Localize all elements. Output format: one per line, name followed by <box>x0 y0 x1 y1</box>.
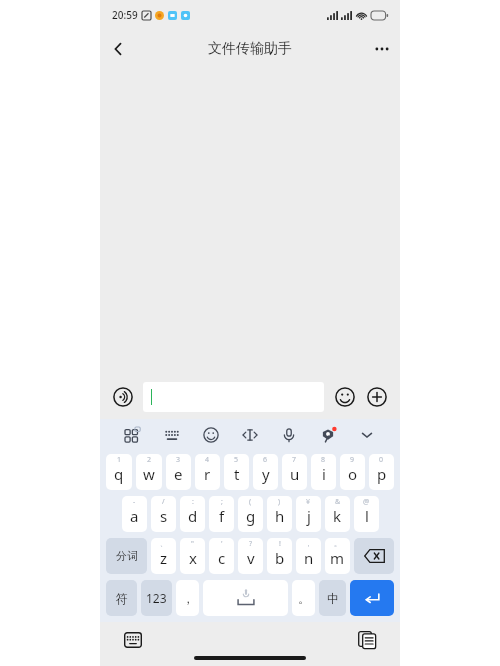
button[interactable]: 4 <box>195 454 220 490</box>
staticText: v <box>247 548 255 568</box>
button[interactable]: Enter <box>350 580 394 616</box>
staticText: ) <box>278 497 281 507</box>
button[interactable]: Hide keyboard <box>354 422 380 448</box>
staticText: 。 <box>334 539 341 548</box>
staticText: o <box>348 464 358 484</box>
button[interactable]: 、 <box>151 538 176 574</box>
staticText: ( <box>249 497 252 507</box>
button[interactable]: Switch keyboard <box>120 627 146 653</box>
staticText: c <box>218 548 226 568</box>
staticText: e <box>174 464 183 484</box>
staticText: ! <box>279 539 281 549</box>
button[interactable]: 8 <box>311 454 336 490</box>
staticText: @ <box>363 497 370 507</box>
button[interactable]: " <box>180 538 205 574</box>
button[interactable] <box>143 382 324 412</box>
staticText: d <box>188 506 198 526</box>
button[interactable]: ( <box>238 496 263 532</box>
button[interactable]: Space <box>203 580 288 616</box>
button[interactable]: 分词 <box>106 538 147 574</box>
staticText: m <box>330 548 345 568</box>
button[interactable]: 。 <box>292 580 315 616</box>
button[interactable]: 符 <box>106 580 137 616</box>
button[interactable]: 1 <box>106 454 132 490</box>
button[interactable]: / <box>151 496 176 532</box>
button[interactable]: ， <box>296 538 321 574</box>
button[interactable]: 中 <box>319 580 346 616</box>
staticText: 8 <box>321 455 326 465</box>
staticText: ; <box>221 497 223 507</box>
staticText: t <box>234 464 240 484</box>
staticText: " <box>191 539 194 549</box>
staticText: k <box>333 506 342 526</box>
button[interactable]: ! <box>267 538 292 574</box>
staticText: i <box>322 464 326 484</box>
button[interactable]: & <box>325 496 350 532</box>
staticText: 9 <box>350 455 355 465</box>
staticText: 3 <box>176 455 181 465</box>
staticText: y <box>262 464 270 484</box>
button[interactable]: 。 <box>325 538 350 574</box>
button[interactable]: 9 <box>340 454 365 490</box>
staticText: ? <box>249 539 253 549</box>
button[interactable]: Back <box>100 31 136 67</box>
staticText: g <box>246 506 256 526</box>
staticText: 20:59 <box>112 8 138 22</box>
button[interactable]: ¥ <box>296 496 321 532</box>
button[interactable]: ) <box>267 496 292 532</box>
staticText: q <box>114 464 124 484</box>
staticText: x <box>189 548 197 568</box>
button[interactable]: Clipboard <box>354 627 380 653</box>
button[interactable]: More options <box>364 31 400 67</box>
staticText: r <box>204 464 211 484</box>
button[interactable]: ? <box>238 538 263 574</box>
button[interactable]: Voice input <box>276 422 302 448</box>
button[interactable]: ; <box>209 496 234 532</box>
button[interactable]: Voice input <box>110 384 136 410</box>
button[interactable]: 6 <box>253 454 278 490</box>
button[interactable]: 5 <box>224 454 249 490</box>
staticText: 2 <box>147 455 152 465</box>
button[interactable]: Emoji <box>332 384 358 410</box>
staticText: 7 <box>292 455 297 465</box>
staticText: 文件传输助手 <box>208 40 292 58</box>
button[interactable]: @ <box>354 496 379 532</box>
button[interactable]: Keyboard layout <box>159 422 185 448</box>
staticText: w <box>143 464 155 484</box>
staticText: a <box>130 506 139 526</box>
button[interactable]: Emoji <box>198 422 224 448</box>
button[interactable]: Panels <box>120 422 146 448</box>
button[interactable]: 123 <box>141 580 172 616</box>
staticText: u <box>290 464 300 484</box>
staticText: 、 <box>160 539 167 548</box>
staticText: h <box>275 506 285 526</box>
button[interactable]: Backspace <box>354 538 394 574</box>
button[interactable]: Settings <box>315 422 341 448</box>
staticText: / <box>162 497 165 507</box>
staticText: 6 <box>263 455 268 465</box>
button[interactable]: 3 <box>166 454 191 490</box>
staticText: j <box>307 506 311 526</box>
staticText: : <box>192 497 194 507</box>
staticText: p <box>377 464 387 484</box>
staticText: 符 <box>116 591 128 606</box>
button[interactable]: Move cursor <box>237 422 263 448</box>
staticText: ' <box>221 539 223 549</box>
button[interactable]: ， <box>176 580 199 616</box>
button[interactable]: 7 <box>282 454 307 490</box>
button[interactable]: 0 <box>369 454 394 490</box>
staticText: - <box>133 497 136 507</box>
button[interactable]: - <box>122 496 147 532</box>
staticText: 4 <box>205 455 210 465</box>
staticText: 0 <box>379 455 384 465</box>
button[interactable]: 2 <box>136 454 162 490</box>
staticText: 。 <box>298 591 310 606</box>
button[interactable]: : <box>180 496 205 532</box>
staticText: b <box>275 548 285 568</box>
button[interactable]: ' <box>209 538 234 574</box>
staticText: 中 <box>327 591 339 606</box>
staticText: n <box>304 548 314 568</box>
button[interactable]: Add attachment <box>364 384 390 410</box>
staticText: 123 <box>146 590 167 606</box>
staticText: 5 <box>234 455 239 465</box>
